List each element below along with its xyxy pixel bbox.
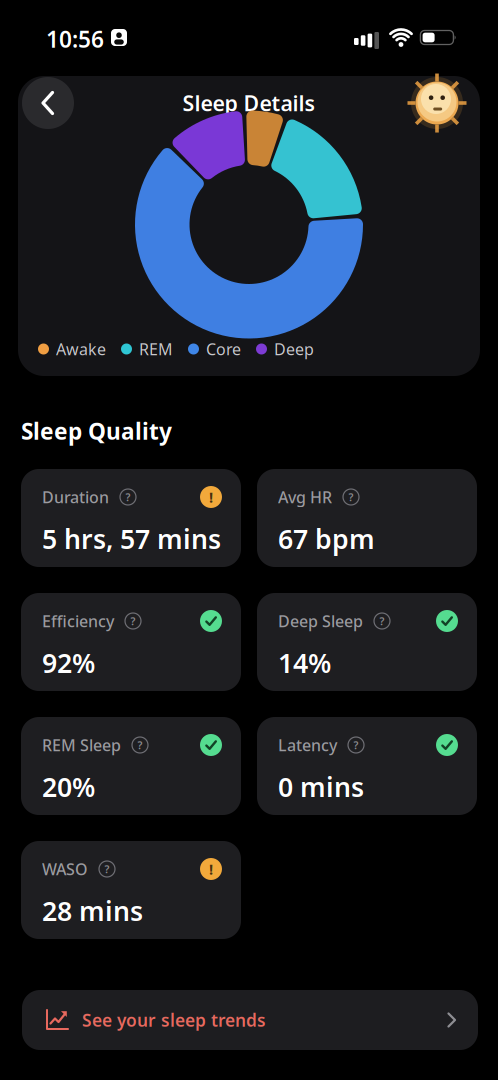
button[interactable]: Light mode [405,71,469,135]
staticText: 67 bpm [278,521,375,556]
staticText: WASO [42,858,88,880]
button[interactable]: REM Sleep [21,717,241,815]
button[interactable]: Back [22,77,74,129]
button[interactable]: Duration [21,469,241,567]
staticText: ? [348,490,353,504]
staticText: See your sleep trends [82,1008,266,1031]
staticText: Awake [56,338,106,360]
staticText: 28 mins [42,893,143,928]
button[interactable]: See your sleep trends [22,990,478,1050]
staticText: Core [206,338,241,360]
staticText: 14% [278,645,331,680]
staticText: ! [209,487,213,507]
staticText: ? [125,490,130,504]
staticText: ! [209,859,213,879]
staticText: REM Sleep [42,734,121,756]
staticText: 92% [42,645,95,680]
staticText: ? [379,614,384,628]
staticText: ? [104,862,109,876]
staticText: 10:56 [46,24,104,54]
staticText: REM [139,338,173,360]
staticText: Latency [278,734,337,756]
button[interactable]: WASO [21,841,241,939]
staticText: Deep Sleep [278,610,363,632]
button[interactable]: Avg HR [257,469,477,567]
button[interactable]: Latency [257,717,477,815]
staticText: Efficiency [42,610,114,632]
staticText: 0 mins [278,769,364,804]
staticText: ? [137,738,142,752]
staticText: ? [353,738,358,752]
button[interactable]: Deep Sleep [257,593,477,691]
staticText: Avg HR [278,486,332,508]
staticText: 5 hrs, 57 mins [42,521,221,556]
staticText: 20% [42,769,95,804]
staticText: Duration [42,486,109,508]
staticText: ? [130,614,135,628]
staticText: Sleep Quality [21,416,172,446]
button[interactable]: Efficiency [21,593,241,691]
staticText: Deep [274,338,314,360]
staticText: Sleep Details [182,89,315,117]
